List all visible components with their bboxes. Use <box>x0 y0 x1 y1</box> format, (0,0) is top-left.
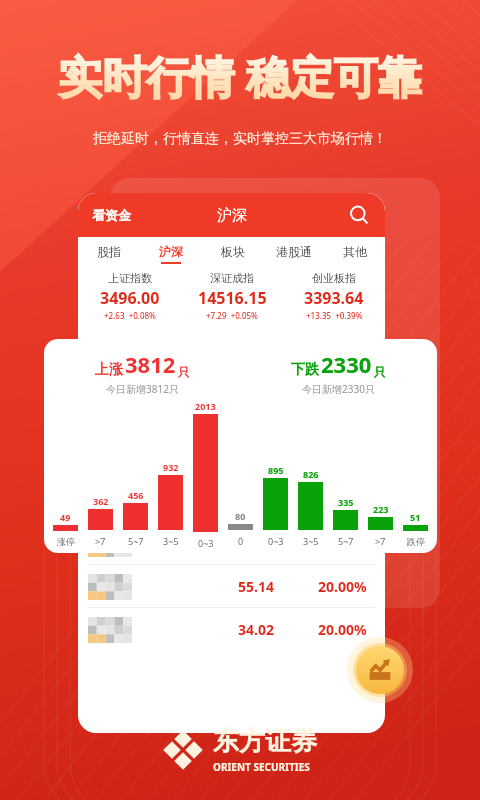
button[interactable]: 更多 <box>341 500 375 514</box>
staticText: 14516.15 <box>198 287 267 309</box>
staticText: 335 <box>338 496 354 508</box>
staticText: 板块 <box>221 244 245 259</box>
staticText: 5~7 <box>338 535 354 547</box>
button[interactable]: 股指 <box>78 244 140 264</box>
staticText: 43.12 <box>238 534 274 553</box>
staticText: 3~5 <box>303 535 319 547</box>
staticText: 55.14 <box>238 577 274 596</box>
staticText: 932 <box>163 461 179 473</box>
staticText: +2.63 +0.08% <box>104 310 156 321</box>
staticText: 拒绝延时，行情直连，实时掌控三大市场行情！ <box>0 130 480 148</box>
button[interactable]: 55.14 <box>78 565 385 608</box>
staticText: 223 <box>373 503 389 515</box>
button[interactable]: 板块 <box>202 244 263 264</box>
button[interactable]: 看资金 <box>92 207 131 223</box>
staticText: 895 <box>268 464 284 476</box>
staticText: +13.35 +0.39% <box>306 310 363 321</box>
staticText: 只 <box>178 364 190 379</box>
button[interactable]: 43.12 <box>78 522 385 565</box>
staticText: 港股通 <box>276 244 312 259</box>
staticText: 上涨 <box>95 361 123 379</box>
staticText: 0 <box>238 535 244 547</box>
staticText: 20.01% <box>318 534 367 553</box>
button[interactable]: 涨幅榜 <box>88 499 193 515</box>
staticText: 0~3 <box>268 535 284 547</box>
staticText: 826 <box>303 468 319 480</box>
staticText: 51 <box>410 511 421 523</box>
staticText: 2330 <box>321 349 372 379</box>
staticText: 3393.64 <box>304 287 364 309</box>
staticText: 只 <box>374 364 386 379</box>
staticText: 2013 <box>195 400 216 412</box>
button[interactable]: 34.02 <box>78 608 385 651</box>
staticText: >7 <box>95 535 106 547</box>
button[interactable]: 港股通 <box>263 244 324 264</box>
staticText: 今日新增2330只 <box>302 382 375 396</box>
staticText: 涨停 <box>57 536 75 547</box>
staticText: 下跌 <box>291 361 319 379</box>
button[interactable]: 上证指数 <box>78 271 181 321</box>
staticText: 20.00% <box>318 620 367 639</box>
staticText: 3812 <box>125 349 176 379</box>
staticText: 东方证券 <box>213 725 317 758</box>
staticText: 创业板指 <box>312 271 356 285</box>
staticText: 沪深 <box>217 206 247 225</box>
staticText: 3496.00 <box>100 287 160 309</box>
button[interactable]: 沪深 <box>140 244 202 264</box>
staticText: 34.02 <box>238 620 274 639</box>
button[interactable]: 其他 <box>324 244 385 264</box>
staticText: 362 <box>93 495 109 507</box>
button[interactable]: 行情走势 <box>356 646 404 694</box>
staticText: 更多 <box>341 500 363 514</box>
staticText: 沪深 <box>159 244 183 259</box>
staticText: 深证成指 <box>210 271 254 285</box>
button[interactable]: 深证成指 <box>181 271 283 321</box>
staticText: 涨幅榜 <box>104 499 143 515</box>
staticText: 其他 <box>343 244 367 259</box>
button[interactable]: 搜索 <box>347 203 371 227</box>
staticText: >7 <box>375 535 386 547</box>
staticText: 80 <box>235 510 246 522</box>
staticText: 0~3 <box>198 537 214 549</box>
staticText: 跌停 <box>407 536 425 547</box>
staticText: 实时行情 稳定可靠 <box>58 46 422 106</box>
staticText: 今日新增3812只 <box>106 382 179 396</box>
staticText: 49 <box>60 511 71 523</box>
staticText: 股指 <box>97 244 121 259</box>
staticText: 20.00% <box>318 577 367 596</box>
staticText: 456 <box>128 489 144 501</box>
staticText: 上证指数 <box>108 271 152 285</box>
button[interactable]: 创业板指 <box>283 271 385 321</box>
staticText: 3~5 <box>163 535 179 547</box>
staticText: ORIENT SECURITIES <box>213 760 310 774</box>
staticText: 涨停分析 <box>156 502 188 512</box>
staticText: 5~7 <box>128 535 144 547</box>
staticText: +7.29 +0.05% <box>206 310 258 321</box>
